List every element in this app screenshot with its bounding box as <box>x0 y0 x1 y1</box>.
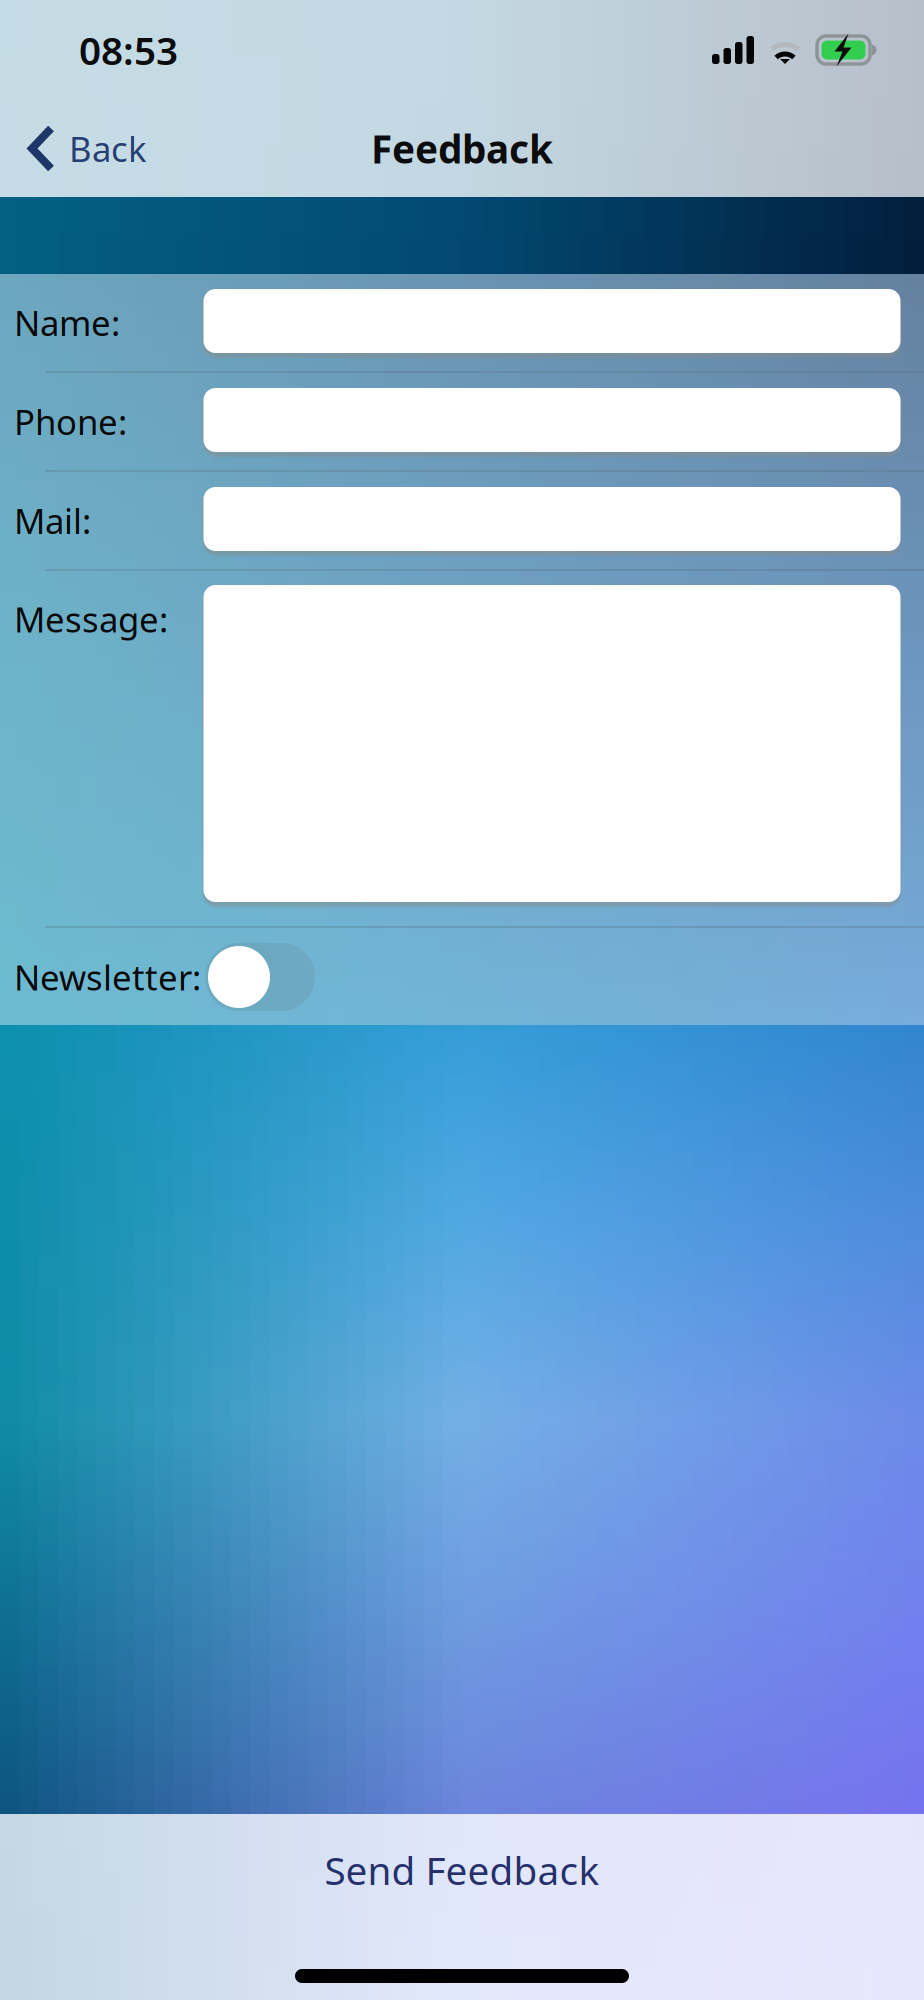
staticText: Mail: <box>14 497 91 543</box>
button[interactable]: Back <box>0 100 167 197</box>
staticText: Back <box>69 125 147 171</box>
staticText: Newsletter: <box>14 954 201 1000</box>
staticText: Message: <box>14 596 168 642</box>
button[interactable]: Send Feedback <box>0 1814 924 1926</box>
staticText: Feedback <box>371 123 553 174</box>
staticText: 08:53 <box>79 24 178 76</box>
button[interactable]: Newsletter <box>189 928 331 1026</box>
staticText: Phone: <box>14 398 127 444</box>
staticText: Send Feedback <box>324 1844 599 1896</box>
staticText: Name: <box>14 299 120 345</box>
